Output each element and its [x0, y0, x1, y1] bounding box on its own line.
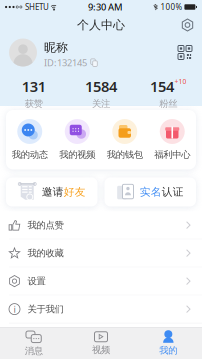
button[interactable]: Settings [177, 14, 198, 35]
button[interactable]: 我的动态 [6, 119, 53, 160]
staticText: 视频 [92, 344, 110, 356]
button[interactable]: 1584 [67, 76, 135, 109]
button[interactable]: 福利中心 [148, 119, 196, 160]
staticText: 我的 [159, 345, 177, 356]
staticText: 我的点赞 [27, 219, 63, 231]
staticText: 我的动态 [12, 149, 48, 160]
staticText: 福利中心 [154, 149, 190, 160]
staticText: 设置 [27, 275, 45, 287]
staticText: 获赞 [25, 98, 43, 109]
button[interactable]: 我的点赞 [0, 211, 202, 239]
button[interactable]: i [0, 295, 202, 323]
staticText: 邀请 [42, 185, 64, 198]
staticText: i [13, 303, 15, 315]
staticText: 消息 [25, 345, 43, 357]
button[interactable]: 我的视频 [53, 119, 101, 160]
staticText: 131 [22, 76, 46, 96]
staticText: 154 [150, 76, 174, 96]
button[interactable]: 131 [0, 76, 67, 109]
button[interactable]: 视频 [67, 328, 135, 359]
button[interactable]: 实名 [104, 177, 196, 206]
button[interactable]: 设置 [0, 267, 202, 295]
staticText: ID:132145 [44, 56, 87, 69]
button[interactable]: 我的收藏 [0, 239, 202, 267]
staticText: 关注 [92, 98, 110, 109]
staticText: 实名 [140, 185, 162, 198]
staticText: 100% [160, 2, 182, 12]
button[interactable]: 消息 [0, 328, 67, 359]
staticText: 我的钱包 [107, 149, 143, 160]
button[interactable]: 邀请 [6, 177, 97, 206]
staticText: 昵称 [44, 40, 68, 55]
staticText: 1584 [85, 76, 117, 96]
staticText: 粉丝 [159, 98, 177, 109]
staticText: +10 [175, 77, 187, 86]
button[interactable]: 昵称 [9, 36, 98, 69]
staticText: 我的视频 [59, 149, 95, 160]
staticText: 我的收藏 [27, 247, 63, 259]
button[interactable]: 我的 [135, 328, 202, 359]
staticText: SHETU [25, 2, 49, 12]
button[interactable]: 我的钱包 [101, 119, 148, 160]
staticText: 好友 [64, 185, 86, 198]
staticText: 9:30 AM [88, 1, 123, 13]
staticText: 关于我们 [27, 303, 63, 315]
button[interactable]: 154 [135, 76, 202, 109]
staticText: 个人中心 [77, 18, 125, 32]
button[interactable]: My QR code [175, 42, 195, 62]
staticText: 认证 [162, 185, 184, 198]
